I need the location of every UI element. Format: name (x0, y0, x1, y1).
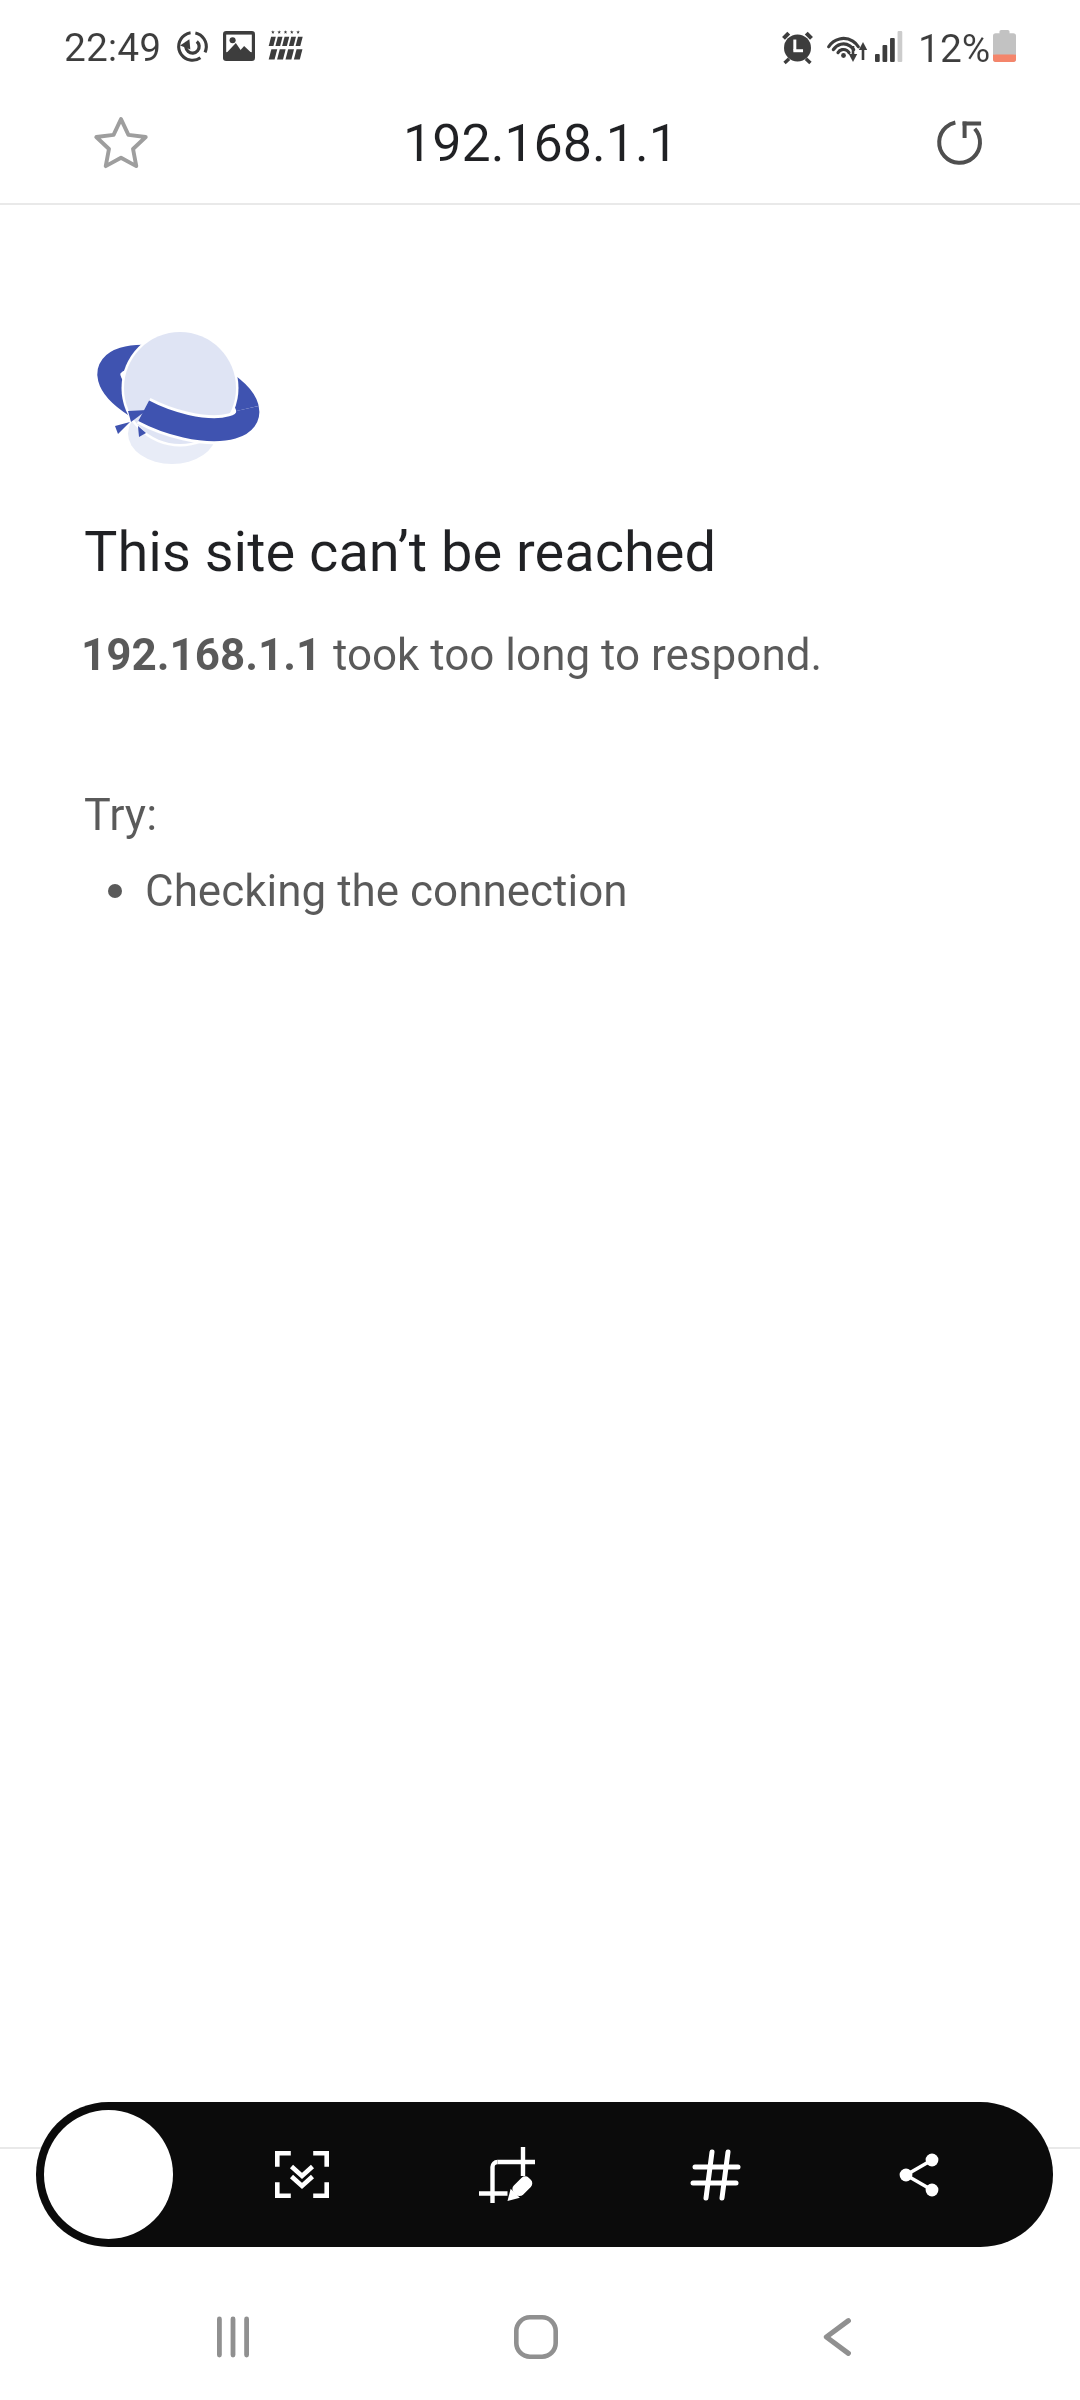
button[interactable]: Recent apps (179, 2283, 287, 2391)
button[interactable]: Back (783, 2283, 891, 2391)
button[interactable]: Home (482, 2283, 590, 2391)
button[interactable]: Share (853, 2102, 985, 2247)
button[interactable]: Add bookmark (60, 82, 182, 204)
button[interactable]: Tags (650, 2102, 782, 2247)
staticText: Checking the connection (145, 865, 628, 917)
button[interactable]: Reload page (899, 82, 1021, 204)
staticText: This site can’t be reached (84, 519, 717, 585)
staticText: 192.168.1.1 (81, 629, 322, 681)
button[interactable]: Scroll capture (236, 2102, 368, 2247)
button[interactable]: Screenshot preview (44, 2110, 173, 2239)
staticText: 192.168.1.1 (403, 113, 678, 174)
staticText: 12% (918, 26, 991, 72)
staticText: 22:49 (64, 25, 162, 71)
button[interactable]: Crop and draw (441, 2102, 573, 2247)
staticText: took too long to respond. (322, 629, 823, 681)
staticText: Try: (84, 788, 158, 841)
